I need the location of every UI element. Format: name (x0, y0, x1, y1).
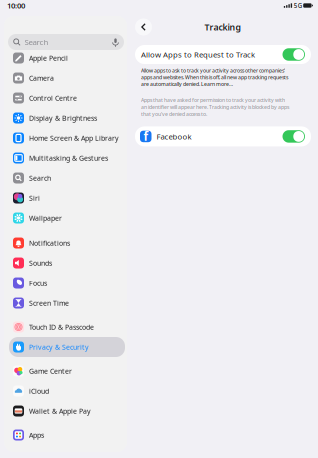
staticText: Control Centre (29, 93, 77, 103)
staticText: f (143, 128, 148, 144)
button[interactable]: Privacy & Security (9, 337, 125, 357)
staticText: Privacy & Security (29, 342, 89, 352)
staticText: Search (25, 37, 49, 47)
button[interactable]: Sounds (9, 253, 125, 273)
button[interactable]: Allow Apps to Request to Track (135, 45, 311, 64)
button[interactable]: Siri (9, 188, 125, 208)
staticText: Sounds (29, 258, 52, 268)
button[interactable]: Touch ID & Passcode (9, 317, 125, 337)
button[interactable]: Notifications (9, 233, 125, 253)
button[interactable]: Wallet & Apple Pay (9, 401, 125, 421)
staticText: Notifications (29, 238, 70, 248)
button[interactable]: Wallpaper (9, 208, 125, 228)
staticText: Apple Pencil (29, 53, 68, 63)
staticText: Siri (29, 193, 40, 203)
staticText: 10:00 (7, 0, 25, 11)
button[interactable]: Camera (9, 68, 125, 88)
button[interactable]: Back (135, 18, 152, 35)
staticText: Wallet & Apple Pay (29, 406, 91, 416)
button[interactable]: Focus (9, 273, 125, 293)
button[interactable]: Screen Time (9, 293, 125, 313)
button[interactable]: Game Center (9, 361, 125, 381)
button[interactable]: Display & Brightness (9, 108, 125, 128)
button[interactable]: Apple Pencil (9, 48, 125, 68)
button[interactable]: Search (9, 168, 125, 188)
staticText: Screen Time (29, 298, 69, 308)
staticText: Home Screen & App Library (29, 133, 119, 143)
button[interactable]: iCloud (9, 381, 125, 401)
staticText: Display & Brightness (29, 113, 97, 123)
staticText: Camera (29, 73, 54, 83)
staticText: Search (29, 173, 51, 183)
button[interactable]: Search (8, 34, 124, 50)
staticText: Game Center (29, 366, 72, 376)
staticText: Apps that have asked for permission to t… (141, 96, 289, 117)
button[interactable]: Home Screen & App Library (9, 128, 125, 148)
staticText: Apps (29, 430, 44, 440)
staticText: Allow apps to ask to track your activity… (141, 67, 288, 87)
staticText: Wallpaper (29, 213, 62, 223)
staticText: 5G (294, 1, 302, 10)
staticText: Focus (29, 278, 47, 288)
staticText: Facebook (156, 131, 191, 142)
staticText: Allow Apps to Request to Track (141, 49, 255, 60)
staticText: Touch ID & Passcode (29, 322, 94, 332)
staticText: Multitasking & Gestures (29, 153, 108, 163)
button[interactable]: Multitasking & Gestures (9, 148, 125, 168)
button[interactable]: Apps (9, 425, 125, 445)
staticText: iCloud (29, 386, 49, 396)
button[interactable]: f (135, 126, 311, 146)
button[interactable]: Control Centre (9, 88, 125, 108)
staticText: Tracking (204, 21, 241, 33)
